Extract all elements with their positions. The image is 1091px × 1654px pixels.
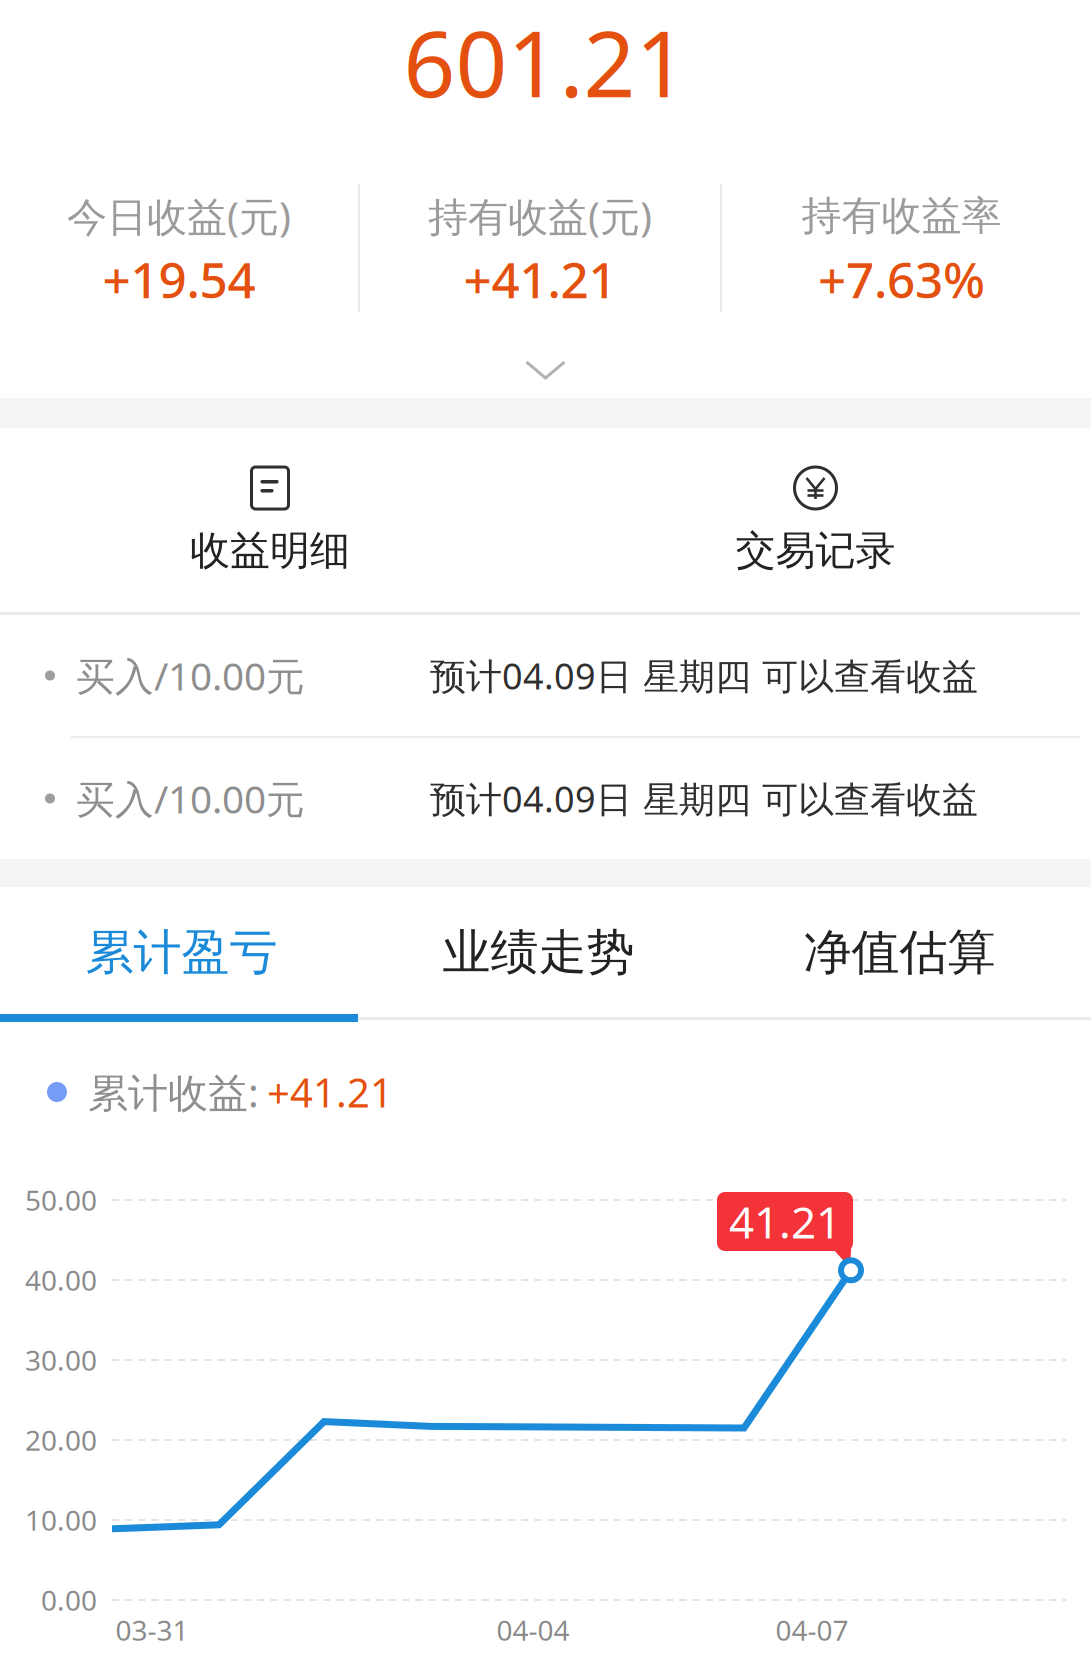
staticText: 41.21 xyxy=(729,1192,841,1251)
staticText: 04-07 xyxy=(775,1611,848,1649)
staticText: 今日收益(元) xyxy=(67,189,291,242)
button[interactable]: 展开 xyxy=(465,342,625,398)
staticText: +19.54 xyxy=(102,246,255,312)
button[interactable]: 买入/10.00元 xyxy=(0,738,1091,859)
staticText: 40.00 xyxy=(25,1261,97,1299)
staticText: 601.21 xyxy=(403,2,687,122)
staticText: 预计04.09日 星期四 可以查看收益 xyxy=(430,652,978,699)
staticText: +41.21 xyxy=(463,246,616,312)
staticText: 20.00 xyxy=(25,1421,97,1459)
staticText: 50.00 xyxy=(25,1181,97,1219)
button[interactable]: 交易记录 xyxy=(540,428,1091,612)
staticText: 累计收益: xyxy=(88,1065,259,1118)
staticText: 预计04.09日 星期四 可以查看收益 xyxy=(430,775,978,822)
staticText: 净值估算 xyxy=(803,923,995,982)
staticText: 30.00 xyxy=(25,1341,97,1379)
staticText: 04-04 xyxy=(496,1611,569,1649)
button[interactable]: 净值估算 xyxy=(715,887,1084,1018)
staticText: 03-31 xyxy=(115,1611,188,1649)
staticText: +7.63% xyxy=(818,246,985,312)
staticText: 交易记录 xyxy=(735,526,895,575)
staticText: 收益明细 xyxy=(190,526,350,575)
button[interactable]: 买入/10.00元 xyxy=(0,615,1091,736)
staticText: 买入/10.00元 xyxy=(76,773,305,824)
button[interactable]: 业绩走势 xyxy=(359,887,718,1018)
staticText: 买入/10.00元 xyxy=(76,650,305,701)
button[interactable]: 累计盈亏 xyxy=(0,887,363,1018)
staticText: 持有收益(元) xyxy=(428,189,652,242)
staticText: 10.00 xyxy=(25,1501,97,1539)
staticText: 0.00 xyxy=(41,1581,97,1619)
staticText: +41.21 xyxy=(267,1065,393,1118)
staticText: 持有收益率 xyxy=(801,191,1001,240)
button[interactable]: 收益明细 xyxy=(0,428,540,612)
staticText: 累计盈亏 xyxy=(85,923,277,982)
staticText: 业绩走势 xyxy=(442,923,634,982)
